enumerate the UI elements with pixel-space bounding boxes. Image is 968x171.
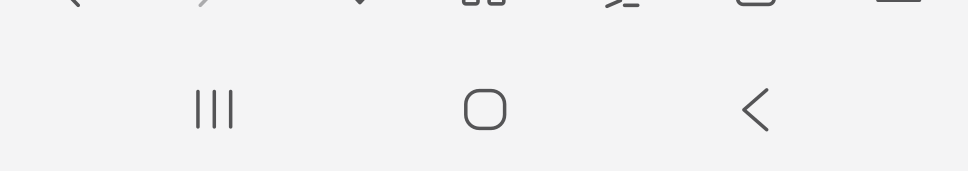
button[interactable]: Bookmarks [454, 0, 518, 22]
button[interactable]: Developer tools [592, 0, 656, 22]
button[interactable]: Home [432, 44, 536, 148]
button[interactable]: Forward [179, 0, 243, 22]
button[interactable]: Downloads [316, 0, 380, 22]
button[interactable]: Menu [867, 0, 931, 22]
button[interactable]: Back [704, 44, 808, 148]
button[interactable]: Back [41, 0, 105, 22]
button[interactable]: Recent apps [161, 44, 265, 148]
button[interactable]: Tabs [729, 0, 793, 22]
